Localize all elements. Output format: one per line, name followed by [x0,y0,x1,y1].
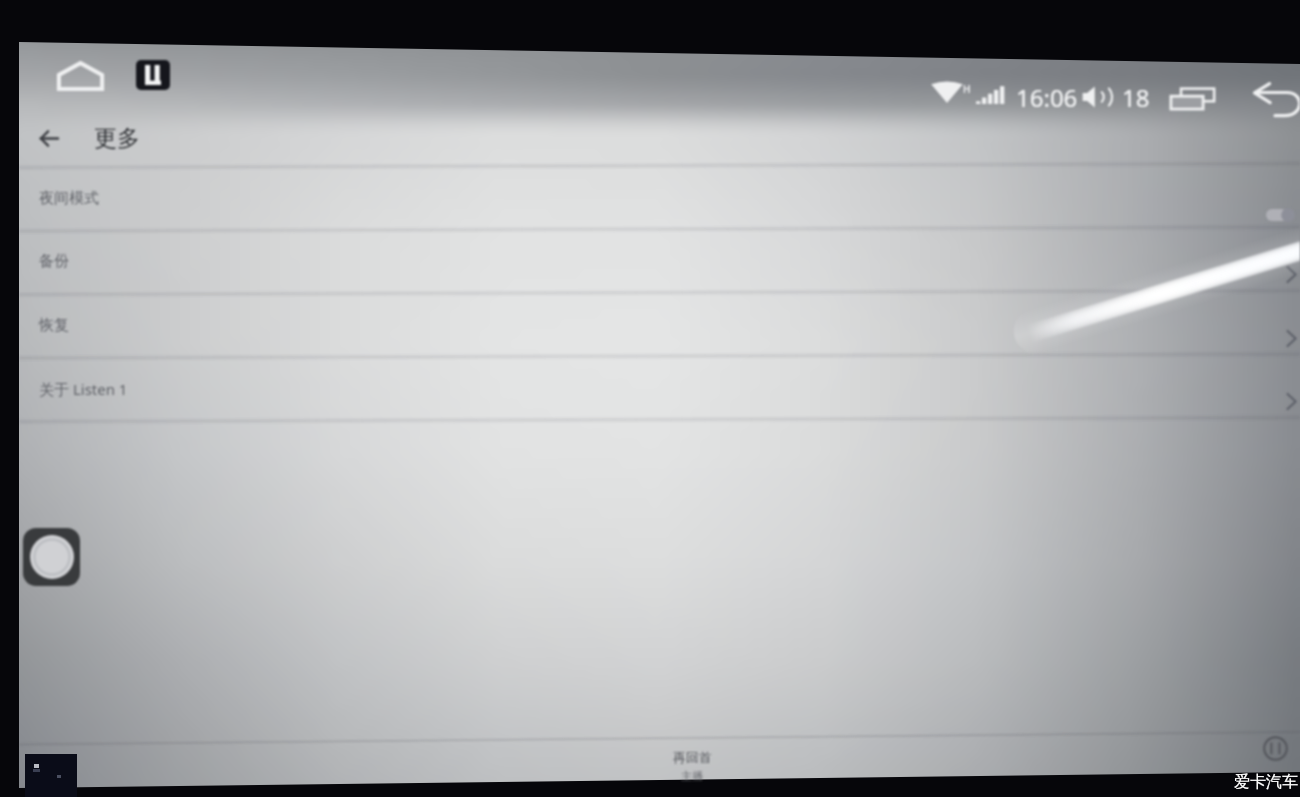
button[interactable]: 夜间模式 [19,168,1300,232]
button[interactable]: 恢复 [19,295,1300,359]
staticText: 关于 Listen 1 [39,379,128,399]
button[interactable] [19,734,1300,786]
button[interactable]: Navigate up [28,118,70,158]
button[interactable]: Listen 1 [136,60,170,90]
staticText: 夜间模式 [39,189,99,208]
staticText: 再回首 [673,749,712,765]
button[interactable]: Recent apps [1162,76,1224,120]
button[interactable]: Back [1248,78,1300,122]
button[interactable]: Pause [1258,731,1292,765]
staticText: 16:06 [1016,81,1078,114]
staticText: 备份 [39,252,69,271]
staticText: 主播 [681,769,703,783]
button[interactable]: Floating home button [23,528,80,586]
button[interactable]: 关于 Listen 1 [19,358,1300,422]
staticText: 18 [1122,81,1150,114]
staticText: 恢复 [39,316,69,335]
button[interactable]: 备份 [19,231,1300,295]
button[interactable]: Home [50,54,110,98]
staticText: H [963,82,971,96]
staticText: 更多 [94,124,140,153]
staticText: 爱卡汽车 [1234,772,1298,792]
